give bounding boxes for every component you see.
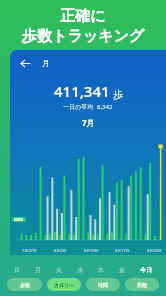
staticText: 今日 xyxy=(140,266,152,274)
staticText: 水 xyxy=(77,266,83,274)
staticText: 7月27日 xyxy=(22,248,37,253)
staticText: カロリー xyxy=(54,282,75,288)
button[interactable]: 歩数 xyxy=(7,278,42,291)
staticText: 時間 xyxy=(98,282,108,288)
staticText: 距離 xyxy=(137,282,147,288)
staticText: 歩 xyxy=(113,88,123,101)
staticText: 歩数トラッキング xyxy=(22,27,145,46)
staticText: 月 xyxy=(35,266,41,274)
staticText: 一日の平均 xyxy=(63,103,94,111)
staticText: 8月10日 xyxy=(84,248,99,253)
staticText: 8,342 xyxy=(97,103,113,111)
button[interactable]: 時間 xyxy=(86,278,120,291)
staticText: 日 xyxy=(14,266,20,274)
button[interactable]: Back xyxy=(16,54,34,72)
button[interactable]: カロリー xyxy=(47,278,81,291)
staticText: 8月3日 xyxy=(54,248,67,253)
staticText: 木 xyxy=(98,266,104,274)
staticText: 月 xyxy=(42,58,50,68)
staticText: 金 xyxy=(119,266,125,274)
staticText: 6000 xyxy=(14,217,24,222)
staticText: 正確に xyxy=(60,7,106,26)
button[interactable]: 距離 xyxy=(125,278,159,291)
staticText: 歩数 xyxy=(20,282,30,288)
staticText: 8月17日 xyxy=(115,248,130,253)
staticText: 8月24日 xyxy=(147,248,162,253)
staticText: 火 xyxy=(56,266,62,274)
staticText: 411,341 xyxy=(54,81,110,101)
staticText: 7月 xyxy=(82,117,95,128)
